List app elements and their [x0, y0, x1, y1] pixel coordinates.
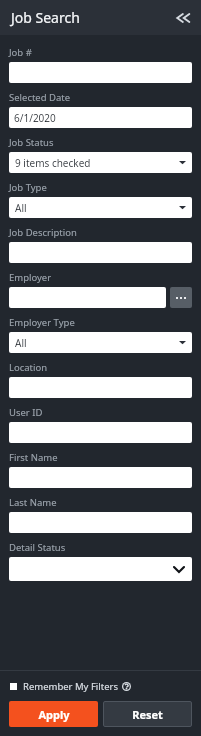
button[interactable] [9, 242, 192, 263]
staticText: All [15, 336, 27, 350]
button[interactable]: Collapse panel [173, 8, 193, 28]
button[interactable]: Remember My Filters [9, 680, 131, 693]
staticText: Selected Date [9, 91, 71, 104]
button[interactable]: Browse employers [170, 287, 192, 308]
button[interactable] [9, 62, 192, 83]
button[interactable]: Apply [9, 701, 98, 727]
button[interactable]: 6/1/2020 [9, 107, 192, 128]
staticText: 6/1/2020 [14, 111, 56, 125]
staticText: User ID [9, 406, 43, 419]
button[interactable] [9, 512, 192, 533]
other: Help [122, 682, 131, 691]
staticText: Job Type [9, 181, 47, 194]
button[interactable] [9, 557, 192, 581]
staticText: Job Search [11, 8, 80, 27]
staticText: Job # [9, 46, 32, 59]
staticText: 9 items checked [15, 156, 91, 170]
staticText: First Name [9, 451, 58, 464]
button[interactable]: 9 items checked [9, 152, 192, 173]
staticText: Detail Status [9, 541, 66, 554]
button[interactable]: All [9, 332, 192, 353]
staticText: Last Name [9, 496, 57, 509]
staticText: All [15, 201, 27, 215]
button[interactable]: Reset [103, 701, 192, 727]
button[interactable] [9, 287, 166, 308]
button[interactable] [9, 422, 192, 443]
staticText: Employer Type [9, 316, 75, 329]
staticText: Employer [9, 271, 52, 284]
button[interactable] [9, 467, 192, 488]
staticText: Job Status [9, 136, 54, 149]
staticText: Apply [38, 707, 70, 722]
staticText: Job Description [9, 226, 77, 239]
button[interactable]: All [9, 197, 192, 218]
button[interactable] [9, 377, 192, 398]
staticText: Location [9, 361, 48, 374]
staticText: Reset [132, 707, 163, 722]
staticText: Remember My Filters [23, 680, 119, 693]
